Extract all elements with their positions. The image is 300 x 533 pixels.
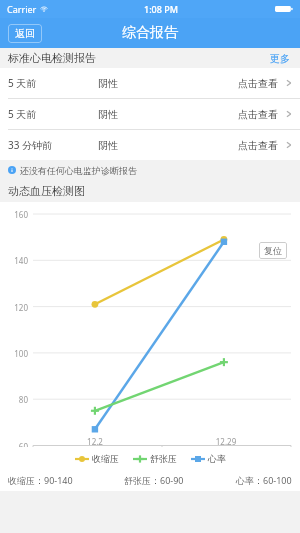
staticText: 阴性 — [98, 77, 183, 90]
button[interactable]: 返回 — [8, 24, 42, 43]
staticText: 阴性 — [98, 139, 183, 152]
button[interactable]: 复位 — [259, 242, 287, 259]
staticText: 心率：60-100 — [236, 474, 292, 486]
button[interactable]: 33 分钟前 — [0, 130, 300, 160]
staticText: 收缩压 — [92, 453, 119, 464]
staticText: 更多 — [270, 52, 290, 65]
staticText: 5 天前 — [8, 76, 98, 90]
staticText: Carrier — [7, 3, 37, 15]
staticText: 5 天前 — [8, 107, 98, 121]
staticText: 舒张压：60-90 — [124, 474, 184, 486]
staticText: 100 — [4, 348, 28, 359]
staticText: 收缩压：90-140 — [8, 474, 73, 486]
staticText: 动态血压检测图 — [8, 184, 85, 198]
staticText: 综合报告 — [122, 24, 178, 42]
staticText: 阴性 — [98, 108, 183, 121]
staticText: 点击查看 — [238, 139, 278, 152]
button[interactable]: 心率 — [191, 453, 226, 464]
staticText: 60 — [4, 441, 28, 452]
button[interactable]: 5 天前 — [0, 68, 300, 98]
staticText: 心率 — [208, 453, 226, 464]
staticText: 舒张压 — [150, 453, 177, 464]
staticText: 12.2 — [75, 436, 115, 447]
staticText: 33 分钟前 — [8, 138, 98, 152]
staticText: 复位 — [264, 245, 282, 256]
staticText: 点击查看 — [238, 108, 278, 121]
staticText: 120 — [4, 302, 28, 313]
staticText: 80 — [4, 394, 28, 405]
staticText: 12.29 — [206, 436, 246, 447]
button[interactable]: 5 天前 — [0, 99, 300, 129]
button[interactable]: 更多 — [268, 50, 292, 67]
staticText: 160 — [4, 209, 28, 220]
staticText: 1:08 PM — [144, 3, 178, 15]
staticText: 140 — [4, 255, 28, 266]
button[interactable]: 舒张压 — [133, 453, 177, 464]
staticText: 还没有任何心电监护诊断报告 — [20, 165, 137, 176]
button[interactable]: 收缩压 — [75, 453, 119, 464]
staticText: 点击查看 — [238, 77, 278, 90]
staticText: 标准心电检测报告 — [8, 51, 96, 65]
staticText: 返回 — [15, 27, 35, 40]
